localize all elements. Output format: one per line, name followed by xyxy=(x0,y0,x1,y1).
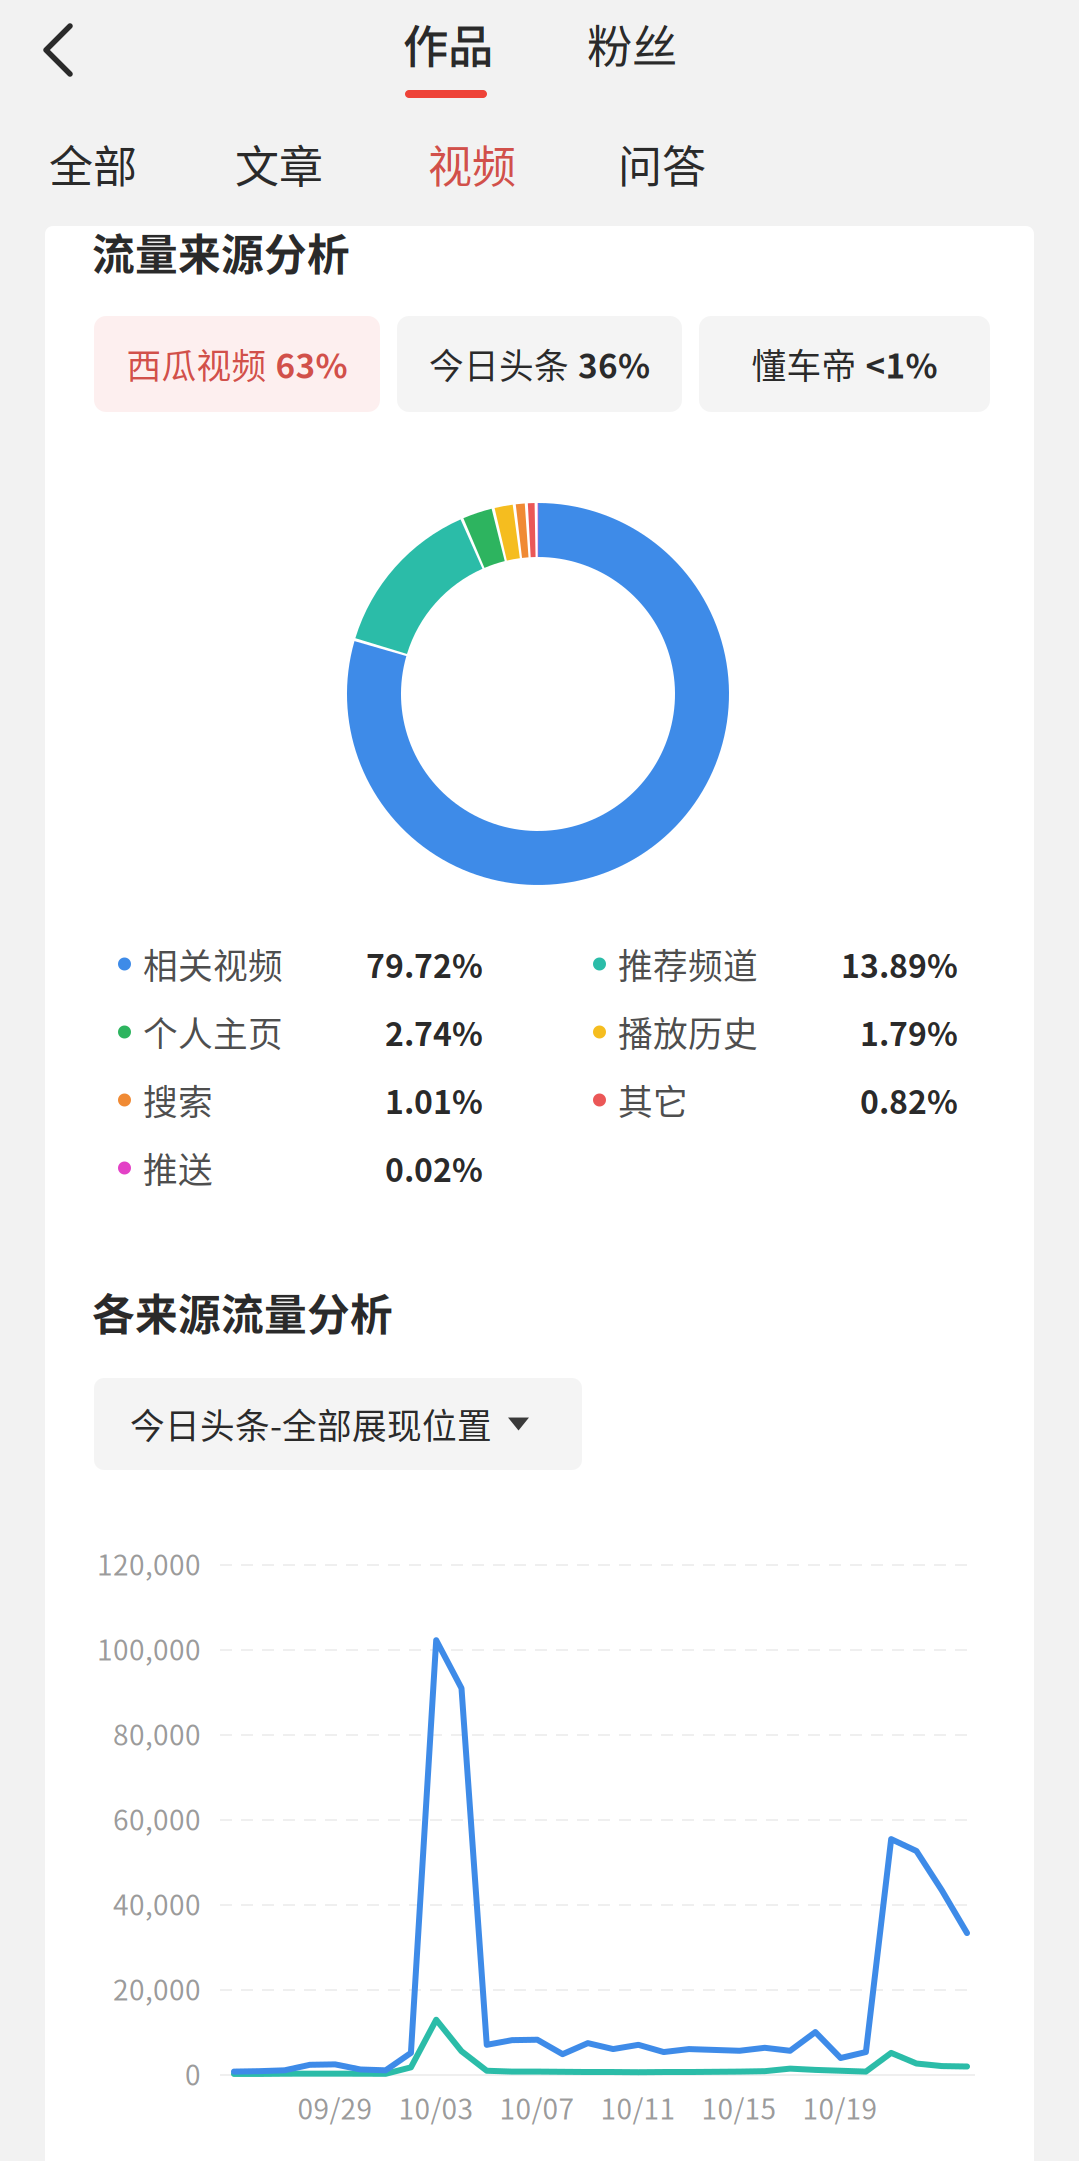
button[interactable]: 粉丝 xyxy=(587,11,677,107)
staticText: 40,000 xyxy=(113,1883,201,1923)
staticText: 13.89% xyxy=(841,941,958,987)
button[interactable]: 全部 xyxy=(49,132,149,196)
staticText: 10/07 xyxy=(499,2087,574,2127)
staticText: 问答 xyxy=(618,132,706,196)
staticText: 63% xyxy=(275,340,347,388)
staticText: 今日头条-全部展现位置 xyxy=(130,1399,492,1449)
staticText: 2.74% xyxy=(385,1009,483,1055)
staticText: 懂车帝 xyxy=(751,339,856,389)
staticText: 作品 xyxy=(403,11,493,77)
staticText: 100,000 xyxy=(97,1628,201,1668)
staticText: 粉丝 xyxy=(587,11,677,77)
staticText: 0.82% xyxy=(860,1077,958,1123)
button[interactable]: 问答 xyxy=(618,132,718,196)
staticText: 相关视频 xyxy=(143,939,283,989)
staticText: 20,000 xyxy=(113,1968,201,2008)
button[interactable]: 今日头条-全部展现位置 xyxy=(94,1378,582,1470)
staticText: 1.79% xyxy=(860,1009,958,1055)
staticText: 36% xyxy=(578,340,650,388)
button[interactable]: 视频 xyxy=(428,132,528,196)
staticText: 10/03 xyxy=(398,2087,473,2127)
staticText: 今日头条 xyxy=(429,339,569,389)
button[interactable]: 懂车帝 xyxy=(699,316,990,412)
button[interactable]: 文章 xyxy=(235,132,335,196)
staticText: 流量来源分析 xyxy=(92,221,350,283)
staticText: 推荐频道 xyxy=(618,939,758,989)
staticText: 0.02% xyxy=(385,1145,483,1191)
staticText: 各来源流量分析 xyxy=(92,1281,393,1343)
staticText: 播放历史 xyxy=(618,1007,758,1057)
staticText: 10/15 xyxy=(701,2087,776,2127)
staticText: <1% xyxy=(865,340,937,388)
staticText: 个人主页 xyxy=(143,1007,283,1057)
staticText: 1.01% xyxy=(385,1077,483,1123)
staticText: 文章 xyxy=(235,132,323,196)
staticText: 搜索 xyxy=(143,1075,213,1125)
staticText: 10/19 xyxy=(802,2087,877,2127)
staticText: 0 xyxy=(185,2053,201,2093)
staticText: 10/11 xyxy=(600,2087,675,2127)
staticText: 全部 xyxy=(49,132,137,196)
staticText: 09/29 xyxy=(297,2087,372,2127)
staticText: 60,000 xyxy=(113,1798,201,1838)
staticText: 其它 xyxy=(618,1075,688,1125)
staticText: 推送 xyxy=(143,1143,213,1193)
staticText: 西瓜视频 xyxy=(126,339,266,389)
button[interactable]: 今日头条 xyxy=(397,316,682,412)
button[interactable]: Back xyxy=(22,2,103,98)
button[interactable]: 作品 xyxy=(403,11,493,107)
button[interactable]: 西瓜视频 xyxy=(94,316,380,412)
staticText: 视频 xyxy=(428,132,516,196)
staticText: 79.72% xyxy=(366,941,483,987)
staticText: 120,000 xyxy=(97,1543,201,1583)
staticText: 80,000 xyxy=(113,1713,201,1753)
